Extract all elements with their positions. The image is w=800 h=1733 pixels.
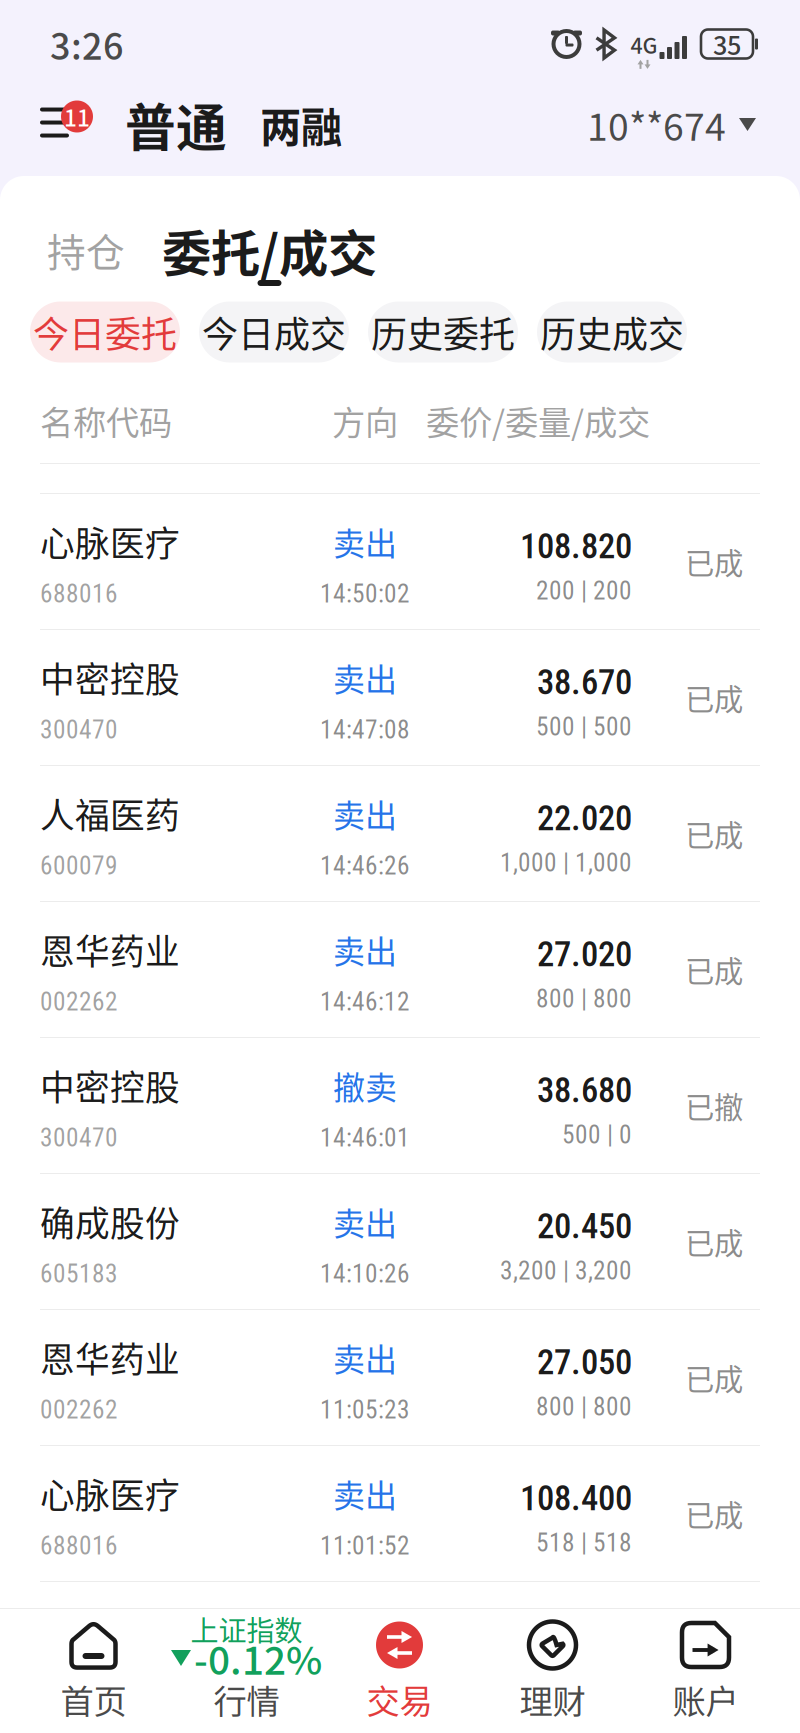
staticText: 普通 <box>125 88 227 161</box>
staticText: 已成 <box>685 676 743 719</box>
staticText: 已成 <box>685 948 743 991</box>
button[interactable]: 今日成交 <box>199 301 349 362</box>
staticText: 27.050 <box>537 1342 632 1383</box>
staticText: 14:46:12 <box>320 987 410 1017</box>
staticText: 卖出 <box>333 1470 397 1517</box>
staticText: 心脉医疗 <box>40 516 180 567</box>
button[interactable]: 人福医药 <box>0 766 800 901</box>
staticText: 账户 <box>672 1675 738 1723</box>
staticText: 恩华药业 <box>40 1332 180 1383</box>
button[interactable]: Menu <box>40 94 100 154</box>
staticText: 11:01:52 <box>320 1531 410 1561</box>
staticText: 名称代码 <box>40 396 172 445</box>
button[interactable]: 恩华药业 <box>0 1310 800 1445</box>
staticText: 22.020 <box>537 798 632 839</box>
button[interactable]: 普通 <box>125 94 227 154</box>
staticText: 35 <box>713 26 741 62</box>
staticText: 800 | 800 <box>536 1392 632 1422</box>
button[interactable]: 中密控股 <box>0 1038 800 1173</box>
button[interactable]: 账户 <box>629 1621 782 1733</box>
button[interactable]: 中密控股 <box>0 630 800 765</box>
staticText: 方向 <box>332 396 398 445</box>
staticText: 688016 <box>40 579 118 609</box>
staticText: 卖出 <box>333 1198 397 1245</box>
staticText: 理财 <box>519 1675 585 1723</box>
button[interactable]: 委托/成交 <box>162 222 377 286</box>
staticText: 500 | 500 <box>536 712 632 742</box>
staticText: 1,000 | 1,000 <box>500 848 632 878</box>
staticText: 600079 <box>40 851 118 881</box>
button[interactable]: 确成股份 <box>0 1174 800 1309</box>
staticText: 确成股份 <box>40 1196 180 1247</box>
staticText: 已成 <box>685 540 743 583</box>
button[interactable]: 历史委托 <box>368 301 518 362</box>
staticText: 002262 <box>40 987 118 1017</box>
staticText: 4G <box>630 29 657 60</box>
staticText: 11 <box>64 100 90 133</box>
staticText: 今日成交 <box>202 306 346 358</box>
staticText: 卖出 <box>333 654 397 701</box>
staticText: 518 | 518 <box>536 1528 632 1558</box>
staticText: 已成 <box>685 1492 743 1535</box>
staticText: 10**674 <box>587 97 726 152</box>
staticText: 38.680 <box>537 1070 632 1111</box>
staticText: 14:50:02 <box>320 579 410 609</box>
staticText: 上证指数 <box>190 1609 302 1649</box>
button[interactable]: 首页 <box>17 1621 170 1733</box>
staticText: 已成 <box>685 812 743 855</box>
staticText: 卖出 <box>333 518 397 565</box>
staticText: 已成 <box>685 1356 743 1399</box>
staticText: 今日委托 <box>33 306 177 358</box>
staticText: 108.820 <box>520 526 632 567</box>
button[interactable]: 心脉医疗 <box>0 1446 800 1581</box>
staticText: 3,200 | 3,200 <box>500 1256 632 1286</box>
button[interactable]: 上证指数 <box>170 1621 323 1733</box>
staticText: 27.020 <box>537 934 632 975</box>
staticText: 38.670 <box>537 662 632 703</box>
staticText: 中密控股 <box>40 652 180 703</box>
staticText: 300470 <box>40 715 118 745</box>
button[interactable]: 今日委托 <box>30 301 180 362</box>
staticText: 14:46:01 <box>320 1123 410 1153</box>
staticText: 历史成交 <box>540 306 684 358</box>
staticText: 已成 <box>685 1220 743 1263</box>
button[interactable]: 交易 <box>323 1621 476 1733</box>
staticText: 首页 <box>60 1675 126 1723</box>
staticText: 500 | 0 <box>562 1120 632 1150</box>
button[interactable]: 历史成交 <box>537 301 687 362</box>
staticText: 心脉医疗 <box>40 1468 180 1519</box>
staticText: 108.400 <box>520 1478 632 1519</box>
staticText: 11:05:23 <box>320 1395 410 1425</box>
staticText: 20.450 <box>537 1206 632 1247</box>
staticText: 恩华药业 <box>40 924 180 975</box>
staticText: 卖出 <box>333 1334 397 1381</box>
staticText: 14:47:08 <box>320 715 410 745</box>
staticText: 交易 <box>366 1675 432 1723</box>
button[interactable]: 心脉医疗 <box>0 494 800 629</box>
button[interactable]: 持仓 <box>46 226 126 286</box>
staticText: 行情 <box>213 1675 279 1723</box>
staticText: 两融 <box>260 95 342 154</box>
staticText: 002262 <box>40 1395 118 1425</box>
staticText: 中密控股 <box>40 1060 180 1111</box>
staticText: 605183 <box>40 1259 118 1289</box>
staticText: 14:10:26 <box>320 1259 410 1289</box>
button[interactable]: 两融 <box>260 94 342 154</box>
staticText: 人福医药 <box>40 788 180 839</box>
staticText: 14:46:26 <box>320 851 410 881</box>
button[interactable]: 恩华药业 <box>0 902 800 1037</box>
staticText: 200 | 200 <box>536 576 632 606</box>
staticText: 3:26 <box>50 18 124 70</box>
staticText: -0.12% <box>194 1630 322 1686</box>
staticText: 撤卖 <box>333 1062 397 1109</box>
staticText: 已撤 <box>685 1084 743 1127</box>
staticText: 委托/成交 <box>162 214 377 286</box>
staticText: 300470 <box>40 1123 118 1153</box>
button[interactable]: 理财 <box>476 1621 629 1733</box>
staticText: 800 | 800 <box>536 984 632 1014</box>
button[interactable]: 10**674 <box>587 94 756 154</box>
staticText: 委价/委量/成交 <box>426 396 650 445</box>
staticText: 历史委托 <box>371 306 515 358</box>
staticText: 卖出 <box>333 790 397 837</box>
staticText: 688016 <box>40 1531 118 1561</box>
